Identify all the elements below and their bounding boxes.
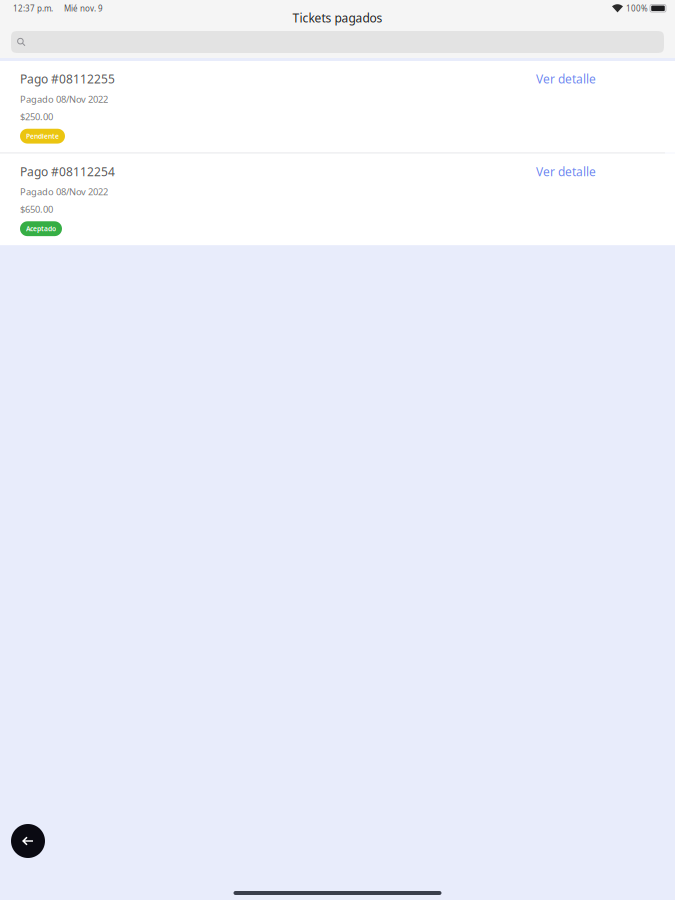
button[interactable]: Ver detalle [536, 164, 596, 179]
staticText: $250.00 [20, 110, 53, 123]
staticText: $650.00 [20, 203, 53, 215]
staticText: Pagado 08/Nov 2022 [20, 185, 108, 198]
staticText: Pendiente [26, 132, 59, 141]
staticText: Ver detalle [536, 71, 596, 87]
staticText: 100% [626, 3, 648, 14]
staticText: Aceptado [26, 224, 56, 233]
staticText: Pago #08112254 [20, 164, 115, 179]
staticText: Pagado 08/Nov 2022 [20, 93, 108, 105]
staticText: Pago #08112255 [20, 71, 115, 87]
button[interactable]: Pago #08112254 [0, 154, 675, 245]
staticText: Tickets pagados [292, 10, 382, 26]
button[interactable]: Pago #08112255 [0, 61, 675, 153]
staticText: Mié nov. 9 [64, 3, 103, 14]
button[interactable]: Back [11, 824, 45, 858]
button[interactable]: Ver detalle [536, 71, 596, 87]
staticText: 12:37 p.m. [13, 3, 53, 14]
staticText: Ver detalle [536, 164, 596, 179]
